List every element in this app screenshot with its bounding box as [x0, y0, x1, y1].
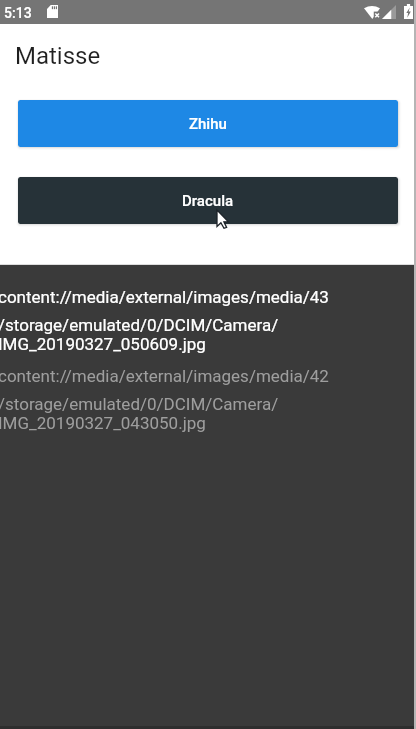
- staticText: content://media/external/images/media/42: [0, 366, 329, 386]
- staticText: Matisse: [15, 42, 101, 70]
- staticText: content://media/external/images/media/43: [0, 287, 329, 307]
- staticText: 5:13: [4, 5, 32, 21]
- staticText: /storage/emulated/0/DCIM/Camera/ IMG_201…: [0, 394, 279, 433]
- button[interactable]: Dracula: [18, 177, 398, 224]
- button[interactable]: Zhihu: [18, 100, 398, 147]
- other: Mobile signal: [382, 5, 396, 19]
- other: Wi-Fi no internet: [364, 6, 380, 19]
- staticText: Zhihu: [189, 115, 227, 133]
- staticText: /storage/emulated/0/DCIM/Camera/ IMG_201…: [0, 315, 279, 354]
- other: SD card: [47, 5, 58, 18]
- staticText: Dracula: [182, 192, 234, 210]
- other: Battery charging: [404, 4, 413, 19]
